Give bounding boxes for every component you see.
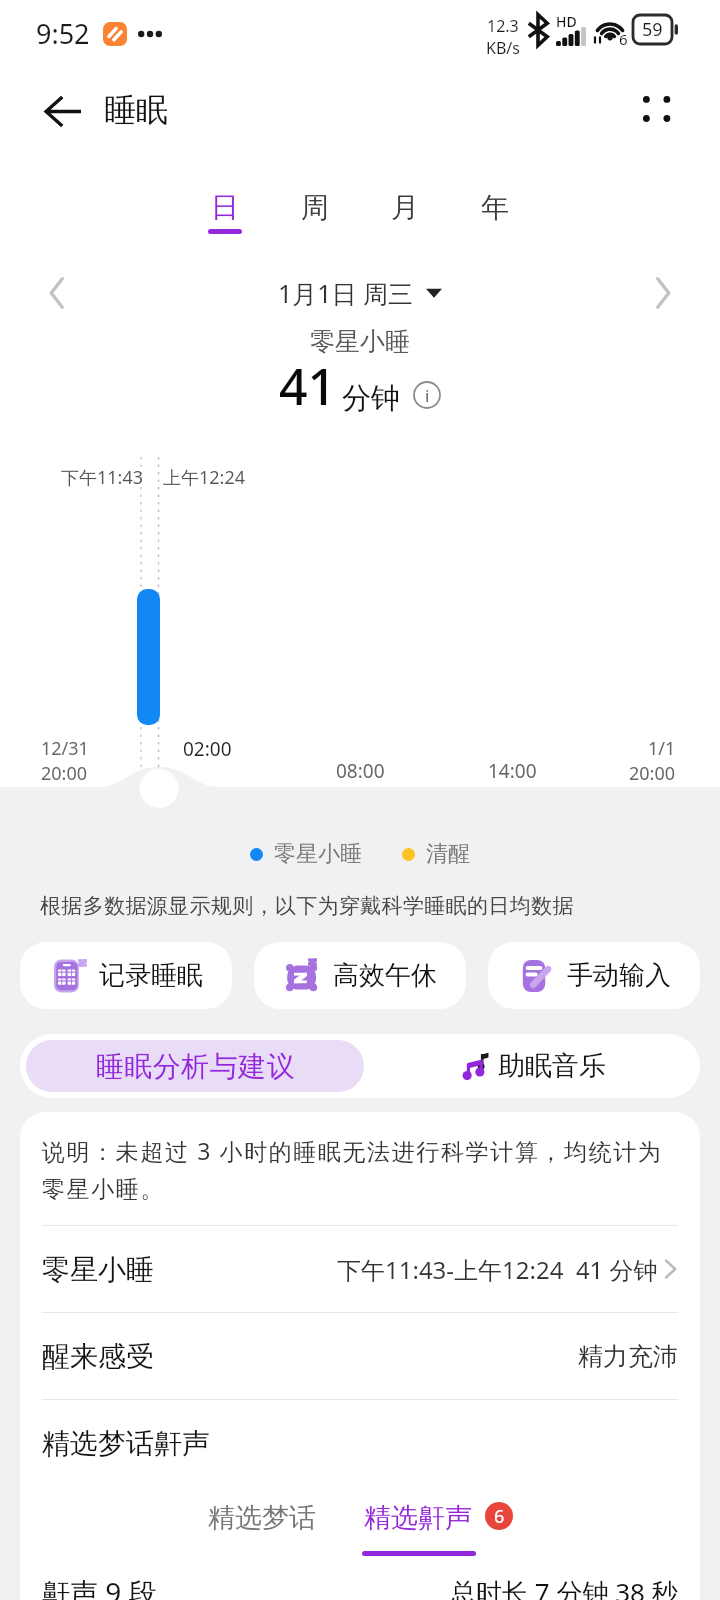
staticText: 清醒 [426,840,470,868]
button[interactable]: 助眠音乐 [370,1034,700,1098]
button[interactable]: 手动输入 [488,942,700,1009]
staticText: 下午11:43 [61,465,144,490]
staticText: 上午12:24 [163,465,246,490]
button[interactable]: Back [34,82,92,140]
staticText: 6 [494,1504,505,1529]
staticText: 说明：未超过 3 小时的睡眠无法进行科学计算，均统计为零星小睡。 [42,1135,678,1203]
staticText: 6 [619,29,628,49]
staticText: 9:52 [36,15,90,52]
staticText: 鼾声 9 段 [42,1573,157,1600]
staticText: 59 [642,17,663,42]
staticText: 精力充沛 [578,1341,678,1372]
staticText: 周 [301,190,329,225]
staticText: 根据多数据源显示规则，以下为穿戴科学睡眠的日均数据 [40,893,574,919]
staticText: 记录睡眠 [99,959,203,992]
staticText: i [425,384,430,407]
staticText: 08:00 [336,758,385,784]
staticText: KB/s [486,37,520,59]
staticText: 20:00 [629,761,676,786]
staticText: 12/31 [41,736,89,761]
staticText: HD [556,12,577,31]
staticText: 睡眠 [104,90,168,130]
button[interactable]: More options [628,81,686,139]
staticText: 41 [279,352,337,420]
staticText: 日 [211,190,239,225]
button[interactable]: Previous day [32,268,82,318]
button[interactable]: 记录睡眠 [20,942,232,1009]
staticText: 02:00 [183,736,232,762]
staticText: 年 [481,190,509,225]
staticText: 醒来感受 [42,1339,154,1374]
staticText: 20:00 [41,761,88,786]
staticText: 14:00 [488,758,537,784]
button[interactable]: 精选鼾声 [362,1495,512,1567]
button[interactable]: 零星小睡 [42,1226,678,1312]
staticText: 助眠音乐 [498,1049,606,1083]
button[interactable]: Next day [638,268,688,318]
staticText: 分钟 [342,380,400,417]
button[interactable]: 年 [450,180,540,248]
button[interactable]: 日 [180,180,270,248]
staticText: 睡眠分析与建议 [96,1049,295,1084]
staticText: 精选梦话 [208,1501,316,1535]
button[interactable]: 精选梦话 [198,1495,326,1541]
staticText: 高效午休 [333,959,437,992]
staticText: 月 [391,190,419,225]
button[interactable]: 睡眠分析与建议 [26,1040,364,1092]
button[interactable]: 月 [360,180,450,248]
button[interactable]: Info [412,380,442,410]
staticText: 精选梦话鼾声 [42,1426,210,1461]
staticText: 零星小睡 [274,840,362,868]
staticText: 手动输入 [567,959,671,992]
staticText: 下午11:43-上午12:24 41 分钟 [337,1253,658,1286]
staticText: 零星小睡 [42,1252,154,1287]
staticText: 零星小睡 [310,326,410,357]
button[interactable]: 醒来感受 [42,1313,678,1399]
staticText: 1月1日 周三 [278,276,414,310]
staticText: 12.3 [487,15,519,37]
staticText: 精选鼾声 [364,1501,472,1535]
staticText: 总时长 7 分钟 38 秒 [450,1574,678,1600]
button[interactable]: 周 [270,180,360,248]
staticText: 1/1 [648,736,676,761]
button[interactable]: 高效午休 [254,942,466,1009]
